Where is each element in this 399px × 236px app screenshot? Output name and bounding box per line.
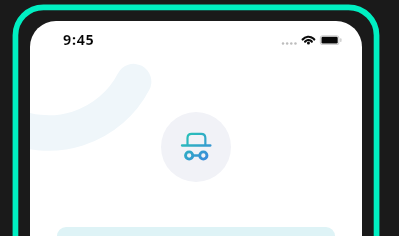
button[interactable] xyxy=(57,227,335,236)
button[interactable]: Incognito mode xyxy=(161,112,231,182)
staticText: 9:45 xyxy=(63,30,95,49)
